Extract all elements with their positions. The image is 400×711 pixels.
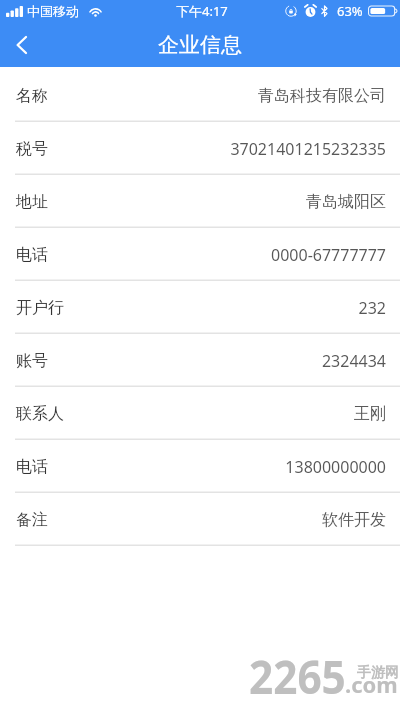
staticText: 备注 bbox=[16, 510, 48, 530]
button[interactable]: 名称 bbox=[0, 69, 400, 122]
staticText: 王刚 bbox=[354, 404, 386, 424]
staticText: 联系人 bbox=[16, 404, 64, 424]
button[interactable]: 开户行 bbox=[0, 281, 400, 334]
button[interactable]: Back bbox=[0, 23, 44, 67]
button[interactable]: 账号 bbox=[0, 334, 400, 387]
button[interactable]: 电话 bbox=[0, 440, 400, 493]
staticText: 电话 bbox=[16, 245, 48, 265]
staticText: 2324434 bbox=[321, 350, 386, 372]
staticText: 企业信息 bbox=[158, 32, 242, 58]
staticText: 63% bbox=[337, 2, 363, 20]
staticText: 名称 bbox=[16, 86, 48, 106]
staticText: 手游网 bbox=[357, 664, 399, 682]
staticText: 软件开发 bbox=[322, 510, 386, 530]
button[interactable]: 税号 bbox=[0, 122, 400, 175]
button[interactable]: 地址 bbox=[0, 175, 400, 228]
staticText: 税号 bbox=[16, 139, 48, 159]
staticText: 37021401215232335 bbox=[230, 138, 386, 160]
staticText: 开户行 bbox=[16, 298, 64, 318]
staticText: 232 bbox=[358, 297, 386, 319]
staticText: 账号 bbox=[16, 351, 48, 371]
staticText: 下午4:17 bbox=[176, 2, 228, 20]
staticText: 0000-67777777 bbox=[271, 244, 386, 266]
staticText: 中国移动 bbox=[27, 3, 79, 19]
staticText: 13800000000 bbox=[285, 456, 386, 478]
button[interactable]: 备注 bbox=[0, 493, 400, 546]
staticText: 青岛科技有限公司 bbox=[258, 86, 386, 106]
staticText: 青岛城阳区 bbox=[306, 192, 386, 212]
button[interactable]: 联系人 bbox=[0, 387, 400, 440]
staticText: 2265 bbox=[249, 644, 346, 708]
staticText: .com bbox=[345, 669, 398, 699]
staticText: 地址 bbox=[16, 192, 48, 212]
button[interactable]: 电话 bbox=[0, 228, 400, 281]
staticText: 电话 bbox=[16, 457, 48, 477]
